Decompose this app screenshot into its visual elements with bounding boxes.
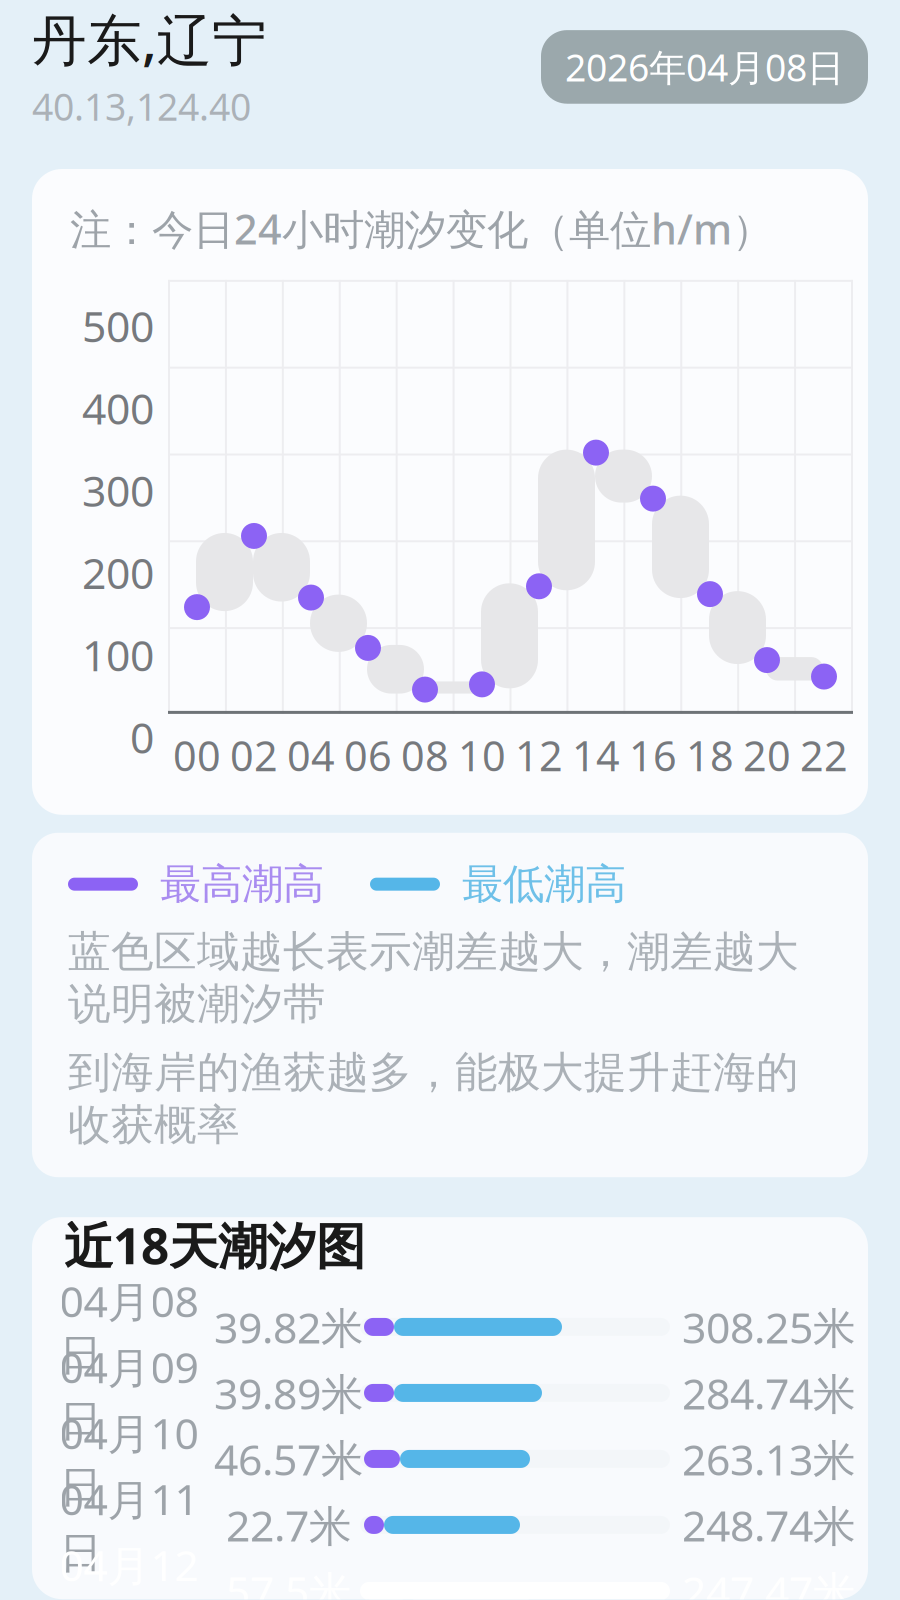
staticText: 04: [287, 728, 335, 783]
staticText: 04月09日: [59, 1338, 198, 1447]
button[interactable]: 2026年04月08日: [541, 30, 868, 104]
staticText: 57.5米: [226, 1563, 352, 1600]
staticText: 12: [515, 728, 563, 783]
button[interactable]: 04月09日: [44, 1360, 856, 1426]
staticText: 46.57米: [214, 1431, 364, 1487]
staticText: 04月08日: [59, 1272, 198, 1381]
staticText: 04月12日: [59, 1536, 198, 1600]
staticText: 39.89米: [214, 1365, 364, 1421]
staticText: 308.25米: [682, 1299, 856, 1355]
staticText: 02: [230, 728, 278, 783]
staticText: 247.47米: [682, 1563, 856, 1600]
staticText: 300: [82, 462, 154, 519]
staticText: 最低潮高: [462, 859, 626, 910]
staticText: 2026年04月08日: [565, 42, 844, 92]
button[interactable]: 04月08日: [44, 1294, 856, 1360]
staticText: 00: [173, 728, 221, 783]
staticText: 08: [401, 728, 449, 783]
staticText: 注：今日24小时潮汐变化（单位h/m）: [70, 201, 773, 256]
staticText: 04月10日: [59, 1404, 198, 1513]
staticText: 到海岸的渔获越多，能极大提升赶海的收获概率: [68, 1046, 799, 1151]
staticText: 500: [82, 297, 154, 354]
staticText: 0: [130, 709, 154, 765]
button[interactable]: 04月11日: [44, 1492, 856, 1558]
staticText: 40.13,124.40: [32, 81, 251, 131]
staticText: 16: [629, 728, 677, 783]
staticText: 248.74米: [682, 1497, 856, 1553]
staticText: 最高潮高: [160, 859, 324, 910]
staticText: 200: [82, 544, 154, 601]
staticText: 18: [686, 728, 734, 783]
staticText: 263.13米: [682, 1431, 856, 1487]
staticText: 22.7米: [226, 1497, 352, 1553]
staticText: 400: [82, 380, 154, 436]
staticText: 39.82米: [214, 1299, 364, 1355]
staticText: 蓝色区域越长表示潮差越大，潮差越大说明被潮汐带: [68, 925, 799, 1030]
staticText: 04月11日: [59, 1470, 198, 1579]
staticText: 100: [82, 626, 154, 683]
staticText: 10: [458, 728, 506, 783]
button[interactable]: 04月10日: [44, 1426, 856, 1492]
staticText: 14: [572, 728, 620, 783]
staticText: 284.74米: [682, 1365, 856, 1421]
staticText: 06: [344, 728, 392, 783]
staticText: 22: [800, 728, 848, 783]
staticText: 丹东,辽宁: [32, 3, 267, 75]
staticText: 20: [743, 728, 791, 783]
staticText: 近18天潮汐图: [64, 1212, 365, 1278]
